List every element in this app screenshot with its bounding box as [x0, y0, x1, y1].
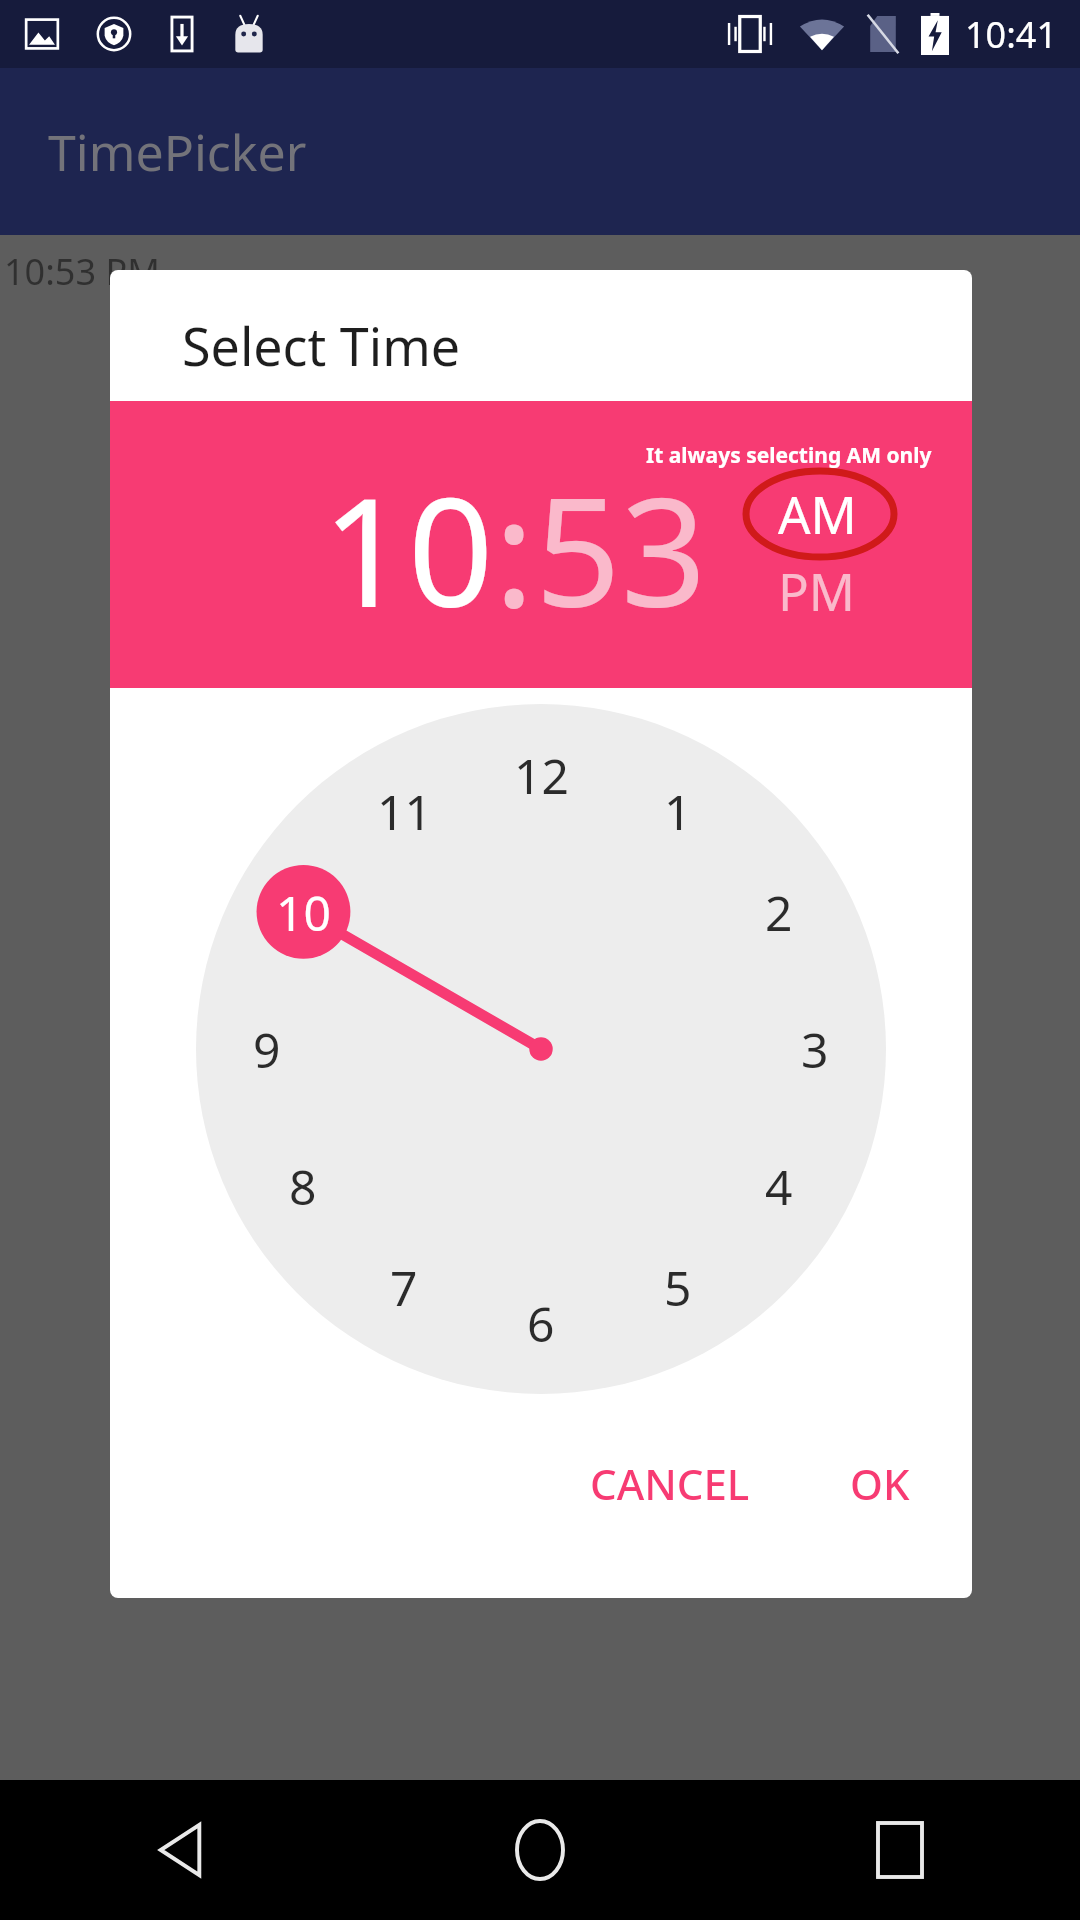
staticText: 10:53 PM — [4, 247, 160, 296]
button[interactable]: Home — [360, 1780, 720, 1920]
staticText: CANCEL — [590, 1455, 750, 1512]
staticText: 3 — [801, 1017, 829, 1082]
button[interactable]: Back — [0, 1780, 360, 1920]
staticText: 11 — [377, 779, 432, 844]
staticText: 1 — [664, 779, 692, 844]
staticText: TimePicker — [48, 118, 307, 186]
staticText: 6 — [527, 1291, 555, 1356]
button[interactable]: OK — [828, 1435, 932, 1532]
staticText: OK — [850, 1455, 910, 1512]
staticText: 9 — [253, 1017, 281, 1082]
button[interactable]: 53 — [535, 447, 707, 651]
button[interactable]: PM — [778, 556, 856, 625]
staticText: 53 — [535, 447, 707, 651]
staticText: AM — [778, 479, 857, 548]
staticText: 12 — [514, 743, 569, 808]
staticText: 2 — [765, 880, 793, 945]
staticText: 8 — [289, 1154, 317, 1219]
staticText: Select Time — [182, 310, 461, 381]
staticText: 5 — [664, 1255, 692, 1320]
button[interactable]: 10 — [322, 447, 494, 651]
button[interactable]: AM — [778, 479, 857, 548]
staticText: 10:41 — [965, 10, 1058, 59]
staticText: 10 — [276, 880, 331, 945]
staticText: 10 — [322, 447, 494, 651]
button[interactable]: CANCEL — [568, 1435, 772, 1532]
staticText: 4 — [765, 1154, 793, 1219]
button[interactable]: Recents — [720, 1780, 1080, 1920]
staticText: 7 — [390, 1255, 418, 1320]
button[interactable]: 12 — [196, 704, 886, 1394]
staticText: PM — [778, 556, 856, 625]
staticText: It always selecting AM only — [646, 441, 932, 470]
staticText: : — [494, 447, 535, 651]
